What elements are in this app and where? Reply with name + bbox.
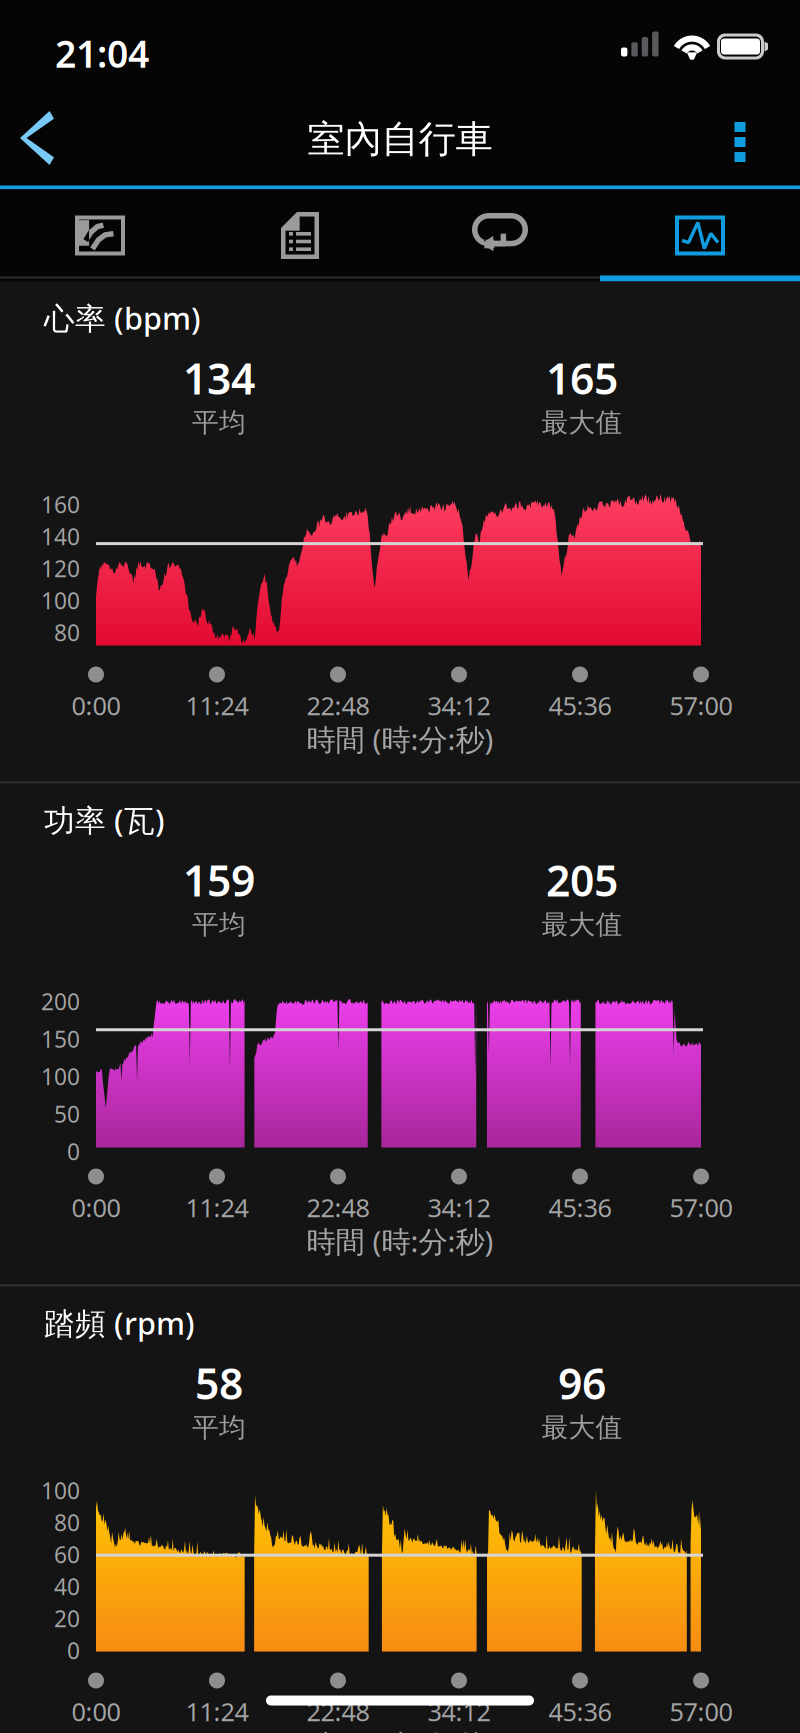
staticText: 96 [558, 1354, 606, 1411]
staticText: 踏頻 (rpm) [44, 1302, 195, 1343]
staticText: 11:24 [185, 1694, 248, 1728]
staticText: 34:12 [427, 1190, 490, 1224]
staticText: 平均 [192, 908, 246, 941]
staticText: 165 [546, 349, 618, 406]
staticText: 時間 (時:分:秒) [306, 1221, 493, 1260]
staticText: 60 [54, 1539, 80, 1570]
staticText: 心率 (bpm) [44, 297, 201, 338]
staticText: 205 [546, 851, 618, 908]
staticText: 50 [54, 1099, 80, 1129]
staticText: 58 [195, 1354, 243, 1411]
staticText: 0:00 [71, 1694, 120, 1728]
staticText: 0:00 [71, 1190, 120, 1224]
staticText: 80 [54, 617, 80, 648]
staticText: 室內自行車 [307, 116, 492, 162]
staticText: 45:36 [548, 1190, 611, 1224]
staticText: 134 [183, 349, 255, 406]
button[interactable]: Details [200, 189, 400, 281]
staticText: 80 [54, 1507, 80, 1538]
button[interactable]: Charts [600, 189, 800, 281]
staticText: 0 [67, 1136, 80, 1167]
staticText: 11:24 [185, 688, 248, 722]
staticText: 平均 [192, 1411, 246, 1444]
staticText: 160 [41, 489, 80, 520]
staticText: 34:12 [427, 688, 490, 722]
staticText: 20 [54, 1603, 80, 1634]
staticText: 100 [41, 1061, 80, 1092]
staticText: 11:24 [185, 1190, 248, 1224]
staticText: 100 [41, 1475, 80, 1506]
staticText: 0:00 [71, 688, 120, 722]
staticText: 34:12 [427, 1694, 490, 1728]
staticText: 平均 [192, 406, 246, 439]
staticText: 159 [183, 851, 255, 908]
staticText: 最大值 [541, 406, 622, 439]
staticText: 45:36 [548, 1694, 611, 1728]
staticText: 100 [41, 585, 80, 616]
staticText: 最大值 [541, 908, 622, 941]
staticText: 21:04 [55, 28, 149, 78]
button[interactable]: Map [0, 189, 200, 281]
staticText: 時間 (時:分:秒) [306, 1725, 493, 1733]
staticText: 22:48 [306, 1190, 369, 1224]
staticText: 45:36 [548, 688, 611, 722]
staticText: 時間 (時:分:秒) [306, 719, 493, 758]
staticText: 22:48 [306, 688, 369, 722]
button[interactable]: Laps [400, 189, 600, 281]
staticText: 40 [54, 1571, 80, 1602]
staticText: 57:00 [669, 688, 732, 722]
staticText: 22:48 [306, 1694, 369, 1728]
staticText: 57:00 [669, 1190, 732, 1224]
button[interactable]: Back [0, 90, 96, 185]
staticText: 120 [41, 553, 80, 584]
staticText: 57:00 [669, 1694, 732, 1728]
button[interactable]: More options [690, 90, 790, 185]
staticText: 150 [41, 1024, 80, 1054]
staticText: 0 [67, 1635, 80, 1666]
staticText: 功率 (瓦) [44, 799, 165, 840]
staticText: 最大值 [541, 1411, 622, 1444]
staticText: 140 [41, 521, 80, 552]
staticText: 200 [41, 986, 80, 1017]
